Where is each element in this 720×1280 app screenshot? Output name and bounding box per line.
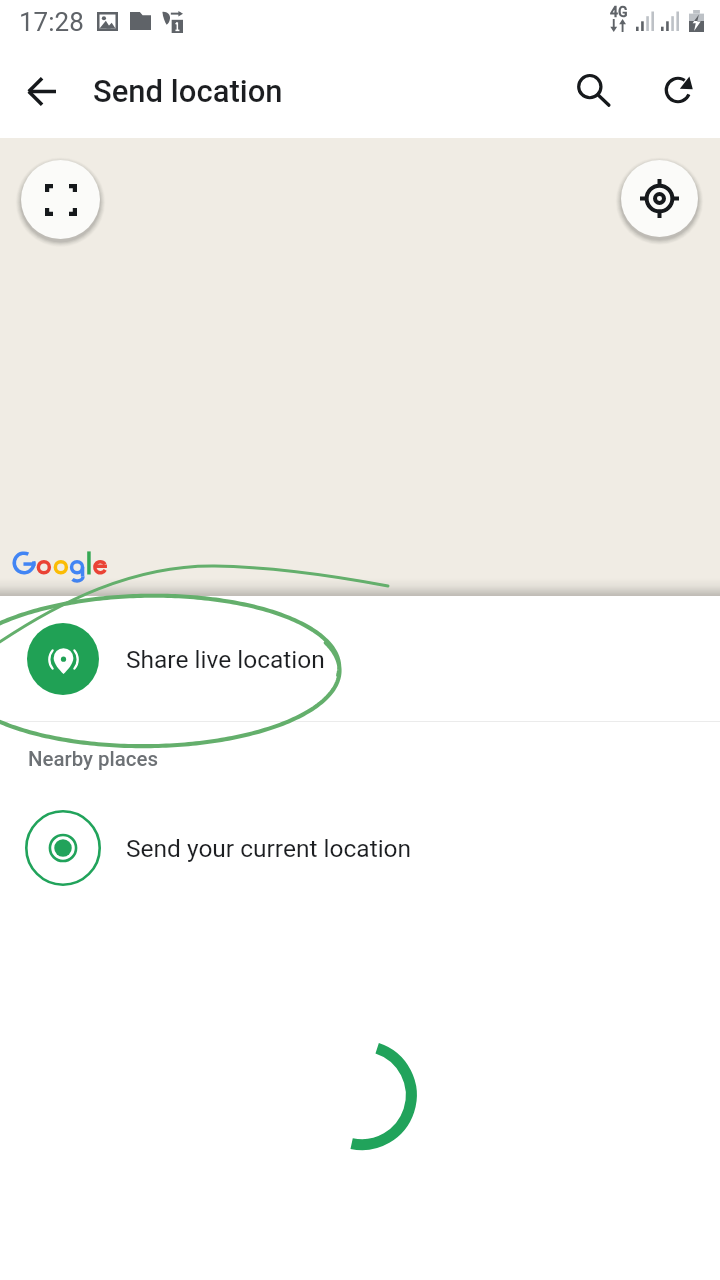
button[interactable]: My location [621,160,698,237]
staticText: Share live location [126,645,325,674]
staticText: Send location [93,73,283,109]
staticText: 4G [610,4,628,20]
staticText: Nearby places [28,747,158,771]
button[interactable]: Refresh [648,60,708,120]
staticText: 17:28 [19,7,84,37]
button[interactable]: Expand map [21,160,100,239]
button[interactable]: Share live location [0,589,720,721]
button[interactable]: Send your current location [0,786,720,910]
button[interactable]: Back [11,61,71,121]
staticText: Send your current location [126,834,412,863]
button[interactable]: Search [564,62,624,122]
